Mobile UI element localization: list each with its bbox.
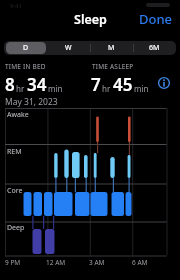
button[interactable]: D [6,42,46,54]
button[interactable] [157,76,171,90]
button[interactable]: M [90,41,133,55]
staticText: 3 AM [89,258,105,267]
staticText: 7 [91,73,101,96]
staticText: TIME ASLEEP [92,62,134,71]
button[interactable]: 6M [133,41,176,55]
staticText: D [23,43,29,53]
staticText: 45 [113,73,133,96]
staticText: 8 [5,73,15,96]
staticText: min [48,83,63,94]
button[interactable]: W [47,41,90,55]
staticText: hr [16,83,25,94]
staticText: Sleep [74,11,107,28]
staticText: Deep [7,223,25,233]
staticText: 6 AM [132,258,148,267]
staticText: 34 [27,73,47,96]
button[interactable]: Done [139,10,173,28]
staticText: M [108,43,115,53]
staticText: Awake [7,110,29,120]
staticText: Core [7,186,23,196]
staticText: W [65,43,72,53]
staticText: 9:41 [10,2,22,10]
staticText: 9 PM [5,258,21,267]
staticText: TIME IN BED [5,62,46,71]
staticText: hr [102,83,111,94]
staticText: May 31, 2023 [5,96,58,108]
staticText: REM [7,147,22,157]
staticText: min [134,83,149,94]
staticText: 12 AM [46,258,66,267]
staticText: 6M [149,43,160,53]
